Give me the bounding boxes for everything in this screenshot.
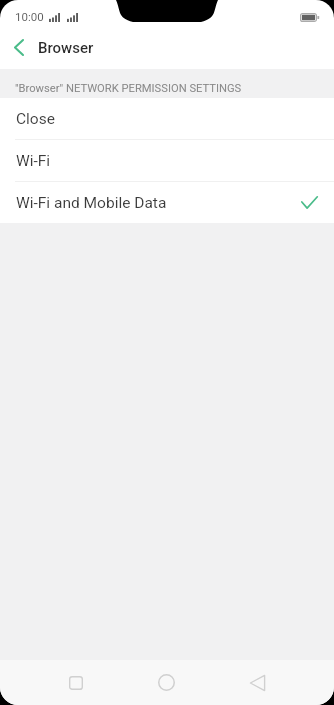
button[interactable]: Wi-Fi and Mobile Data — [0, 182, 334, 223]
staticText: Browser — [38, 39, 94, 57]
staticText: 10:00 — [15, 10, 44, 23]
button[interactable]: Home — [121, 660, 212, 705]
button[interactable]: Back — [212, 660, 303, 705]
button[interactable]: Close — [0, 98, 334, 139]
button[interactable]: Back — [0, 26, 38, 69]
staticText: Wi-Fi and Mobile Data — [16, 194, 167, 212]
staticText: Wi-Fi — [16, 152, 51, 170]
button[interactable]: Recents — [31, 660, 121, 705]
staticText: Close — [16, 110, 55, 128]
staticText: "Browser" NETWORK PERMISSION SETTINGS — [15, 82, 242, 95]
button[interactable]: Wi-Fi — [0, 140, 334, 181]
